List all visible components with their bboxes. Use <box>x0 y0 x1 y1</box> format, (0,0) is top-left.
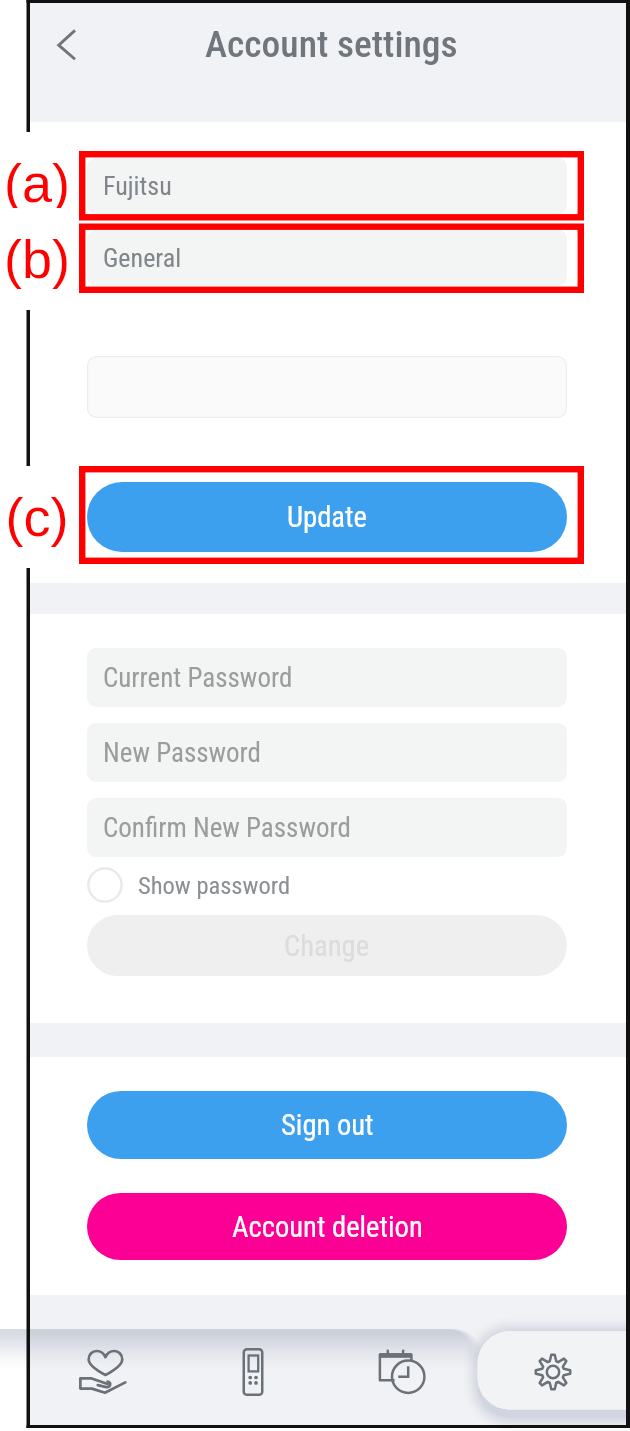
button[interactable]: Account deletion <box>87 1193 567 1260</box>
staticText: Change <box>284 929 370 963</box>
staticText: Current Password <box>103 662 293 694</box>
staticText: Account settings <box>205 22 458 66</box>
staticText: (a) <box>0 153 74 213</box>
staticText: Fujitsu <box>103 171 172 201</box>
button[interactable]: Show password <box>87 867 291 903</box>
button[interactable]: Favourites <box>30 1329 179 1425</box>
staticText: Account deletion <box>232 1210 423 1244</box>
staticText: General <box>103 243 182 273</box>
button[interactable]: Change <box>87 915 567 976</box>
button[interactable]: General <box>87 230 567 286</box>
button[interactable]: Confirm New Password <box>87 798 567 857</box>
button[interactable]: Remote <box>179 1329 328 1425</box>
staticText: Confirm New Password <box>103 812 351 844</box>
button[interactable]: Fujitsu <box>87 158 567 214</box>
button[interactable]: New Password <box>87 723 567 782</box>
button[interactable]: Settings <box>477 1329 626 1425</box>
button[interactable]: Current Password <box>87 648 567 707</box>
staticText: (b) <box>0 229 74 289</box>
button[interactable]: Schedule <box>328 1329 477 1425</box>
staticText: Sign out <box>281 1108 374 1142</box>
staticText: Show password <box>138 871 291 900</box>
button[interactable]: Update <box>87 482 567 552</box>
button[interactable]: Back <box>36 3 108 92</box>
staticText: Update <box>287 500 367 534</box>
button[interactable]: Sign out <box>87 1091 567 1159</box>
staticText: (c) <box>0 487 74 547</box>
staticText: New Password <box>103 737 261 769</box>
